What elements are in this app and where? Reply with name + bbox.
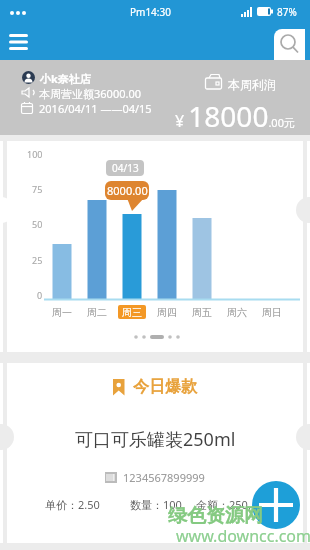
staticText: 绿色资源网: [168, 504, 263, 528]
staticText: 25: [32, 254, 43, 266]
staticText: 单价：2.50: [45, 497, 100, 512]
staticText: 可口可乐罐装250ml: [75, 427, 236, 452]
staticText: 周五: [192, 306, 212, 319]
staticText: 04/13: [112, 161, 139, 175]
staticText: 周三: [122, 306, 142, 319]
staticText: www.downcc.com: [176, 525, 310, 547]
staticText: 周六: [227, 306, 247, 319]
button[interactable]: [2, 26, 38, 58]
staticText: 本周营业额36000.00: [39, 86, 141, 101]
staticText: 1234567899999: [123, 470, 205, 485]
staticText: 50: [32, 218, 43, 230]
staticText: 周一: [52, 306, 72, 319]
staticText: 0: [37, 289, 43, 301]
staticText: 数量：100: [130, 497, 182, 512]
staticText: 今日爆款: [133, 377, 197, 397]
staticText: 周四: [157, 306, 177, 319]
staticText: 金额：250.: [196, 497, 251, 512]
button[interactable]: [252, 481, 300, 529]
staticText: 75: [32, 183, 43, 195]
staticText: 8000.00: [107, 183, 148, 198]
staticText: 周二: [87, 306, 107, 319]
staticText: 100: [27, 148, 43, 160]
staticText: ¥ 18000.00元: [175, 97, 295, 135]
staticText: 小k奈社店: [40, 71, 91, 86]
button[interactable]: [274, 29, 305, 60]
staticText: 周日: [262, 306, 282, 319]
button[interactable]: 可口可乐罐装250ml: [0, 427, 310, 452]
staticText: 87%: [277, 5, 297, 19]
staticText: Pm14:30: [130, 5, 171, 19]
staticText: 本周利润: [228, 77, 276, 92]
staticText: 2016/04/11 ——04/15: [39, 101, 152, 116]
button[interactable]: 今日爆款: [0, 377, 310, 397]
